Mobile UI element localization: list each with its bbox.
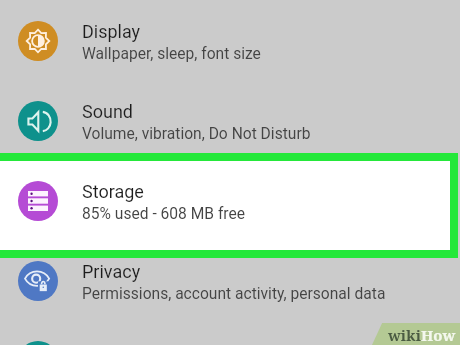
button[interactable]: Privacy xyxy=(0,241,460,321)
button[interactable]: Storage xyxy=(0,161,460,241)
staticText: How xyxy=(421,325,456,345)
staticText: Sound xyxy=(82,101,133,122)
button[interactable]: Location xyxy=(0,321,460,345)
staticText: Privacy xyxy=(82,261,141,282)
button[interactable]: Storage xyxy=(0,161,460,241)
button[interactable]: Sound xyxy=(0,81,460,161)
staticText: Volume, vibration, Do Not Disturb xyxy=(82,125,311,143)
staticText: 85% used - 608 MB free xyxy=(82,205,246,223)
staticText: Storage xyxy=(82,181,144,202)
staticText: Wallpaper, sleep, font size xyxy=(82,45,261,63)
staticText: wiki xyxy=(388,325,421,345)
staticText: Storage xyxy=(82,181,144,202)
staticText: 85% used - 608 MB free xyxy=(82,205,246,223)
staticText: Permissions, account activity, personal … xyxy=(82,285,386,303)
staticText: Display xyxy=(82,21,141,42)
button[interactable]: Display xyxy=(0,1,460,81)
